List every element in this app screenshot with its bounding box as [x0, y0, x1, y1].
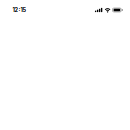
staticText: 12:15	[12, 7, 26, 13]
